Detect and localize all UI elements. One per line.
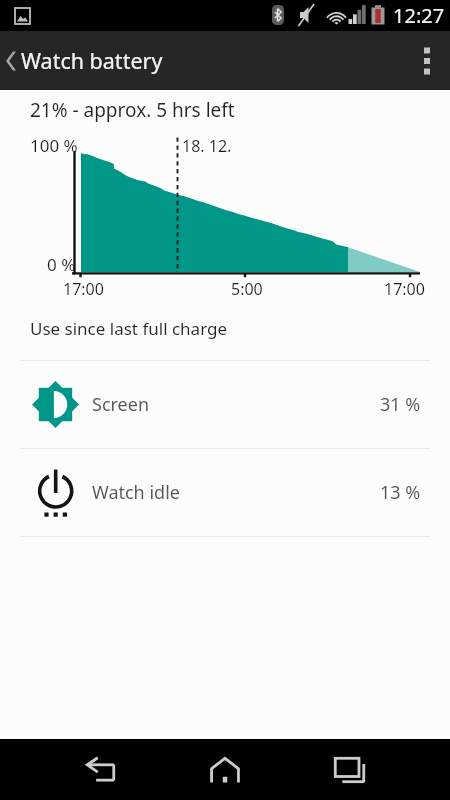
staticText: Use since last full charge — [30, 317, 228, 340]
button[interactable]: Navigate up — [0, 31, 21, 90]
button[interactable]: More options — [404, 31, 450, 90]
staticText: 21% - approx. 5 hrs left — [30, 97, 235, 123]
button[interactable]: Watch idle — [0, 449, 450, 536]
staticText: 17:00 — [63, 278, 104, 300]
staticText: Screen — [92, 392, 150, 417]
button[interactable]: Recent apps — [295, 739, 405, 800]
staticText: 17:00 — [384, 278, 425, 300]
staticText: 31 % — [380, 392, 421, 417]
staticText: Watch battery — [21, 46, 163, 75]
staticText: 13 % — [380, 480, 421, 505]
button[interactable]: Back — [45, 739, 155, 800]
staticText: 0 % — [47, 253, 76, 276]
button[interactable]: Home — [170, 739, 280, 800]
staticText: 12:27 — [393, 2, 445, 29]
staticText: 5:00 — [231, 278, 263, 300]
staticText: 100 % — [30, 134, 78, 157]
staticText: 18. 12. — [182, 135, 232, 157]
staticText: Watch idle — [92, 480, 180, 505]
button[interactable]: Screen — [0, 361, 450, 448]
